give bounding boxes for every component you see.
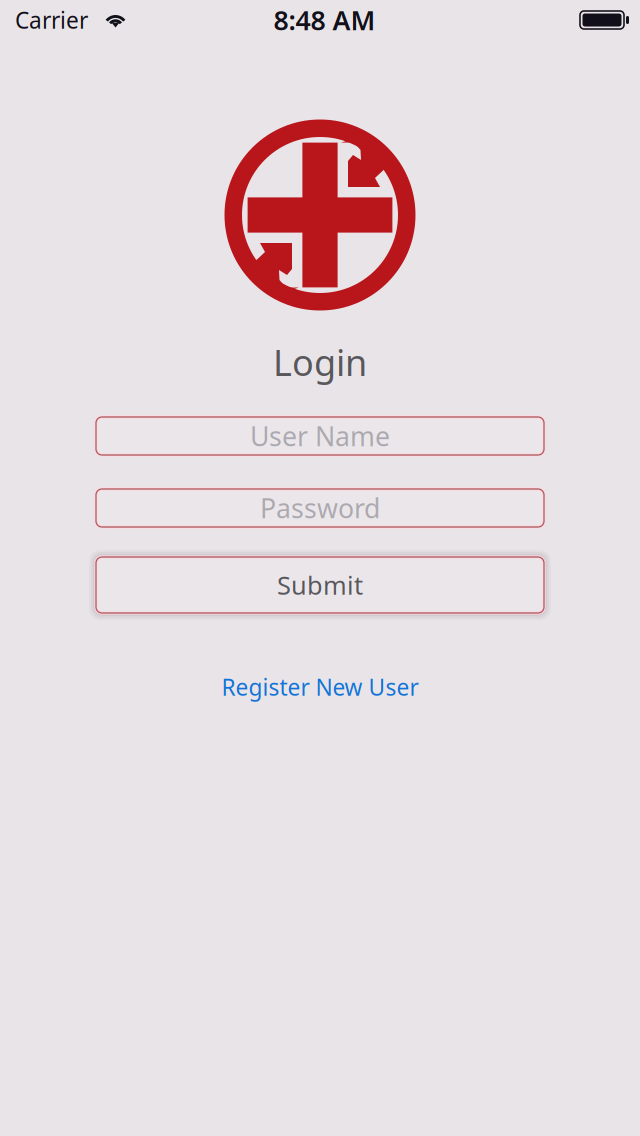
staticText: Submit [277,568,363,602]
button[interactable]: Password [96,489,544,527]
staticText: Login [273,338,367,386]
button[interactable]: Submit [96,557,544,613]
staticText: Carrier [15,5,88,35]
button[interactable]: Register New User [221,672,418,702]
staticText: User Name [250,418,390,454]
staticText: Password [260,490,380,526]
staticText: Register New User [221,672,418,702]
staticText: 8:48 AM [273,2,375,38]
button[interactable]: User Name [96,417,544,455]
